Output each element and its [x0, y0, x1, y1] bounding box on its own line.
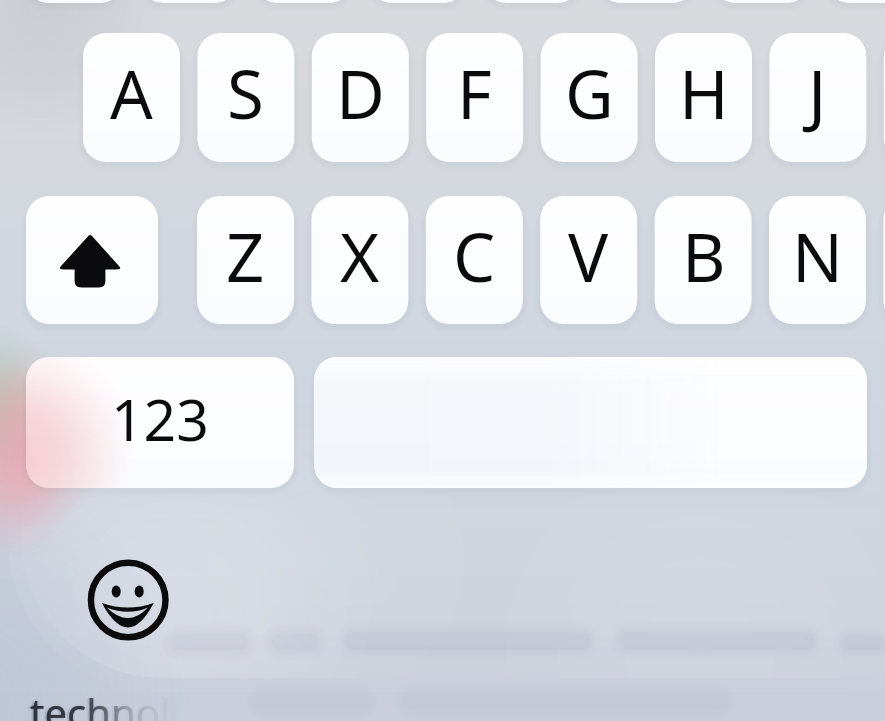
staticText: G	[565, 47, 614, 138]
button[interactable]: Z	[197, 196, 294, 324]
button[interactable]: M	[883, 196, 885, 324]
staticText: technology	[30, 685, 240, 721]
staticText: F	[457, 47, 492, 138]
button[interactable]: Space	[314, 357, 867, 488]
staticText: S	[227, 47, 264, 138]
button[interactable]: S	[197, 33, 294, 162]
staticText: technology	[31, 685, 241, 721]
button[interactable]: A	[83, 33, 180, 162]
button[interactable]: B	[655, 196, 752, 324]
button[interactable]: N	[769, 196, 866, 324]
staticText: technology	[28, 685, 238, 721]
button[interactable]: G	[541, 33, 638, 162]
staticText: technology	[32, 685, 242, 721]
staticText: V	[568, 210, 609, 301]
button[interactable]: D	[312, 33, 409, 162]
button[interactable]: Shift	[26, 196, 158, 324]
staticText: technology	[30, 686, 240, 721]
button[interactable]: K	[884, 33, 885, 162]
button[interactable]: Emoji keyboard	[88, 560, 169, 641]
staticText: A	[110, 47, 153, 138]
staticText: Z	[226, 210, 265, 301]
staticText: C	[453, 210, 496, 301]
staticText: 123	[111, 380, 209, 458]
staticText: N	[792, 210, 843, 301]
button[interactable]: F	[426, 33, 523, 162]
button[interactable]: V	[540, 196, 637, 324]
button[interactable]: H	[655, 33, 752, 162]
staticText: J	[808, 47, 827, 138]
staticText: D	[336, 47, 385, 138]
staticText: X	[340, 210, 380, 301]
staticText: H	[679, 47, 729, 138]
staticText: B	[682, 210, 726, 301]
button[interactable]: J	[769, 33, 866, 162]
staticText: technology	[30, 684, 240, 721]
staticText: technology	[27, 685, 237, 721]
button[interactable]: X	[311, 196, 408, 324]
button[interactable]: 123	[26, 357, 294, 488]
button[interactable]: C	[426, 196, 523, 324]
